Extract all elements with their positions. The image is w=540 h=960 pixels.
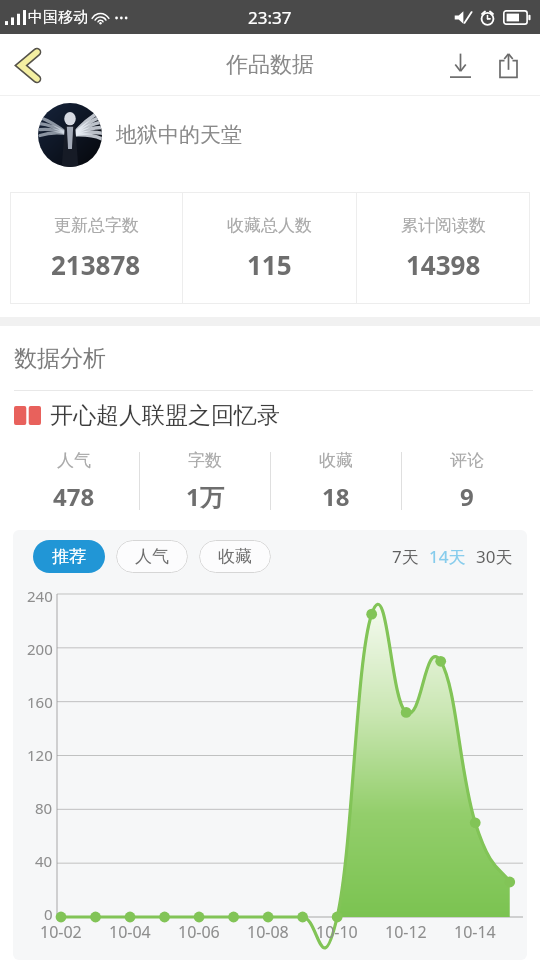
staticText: 人气 <box>135 546 169 567</box>
staticText: 10-04 <box>109 921 151 943</box>
button[interactable]: 收藏 <box>199 540 271 573</box>
button[interactable]: 30天 <box>475 538 514 575</box>
staticText: 213878 <box>51 247 141 282</box>
staticText: 收藏 <box>218 546 252 567</box>
button[interactable]: 收藏 <box>271 439 401 523</box>
staticText: 240 <box>27 586 53 606</box>
button[interactable]: Back <box>0 37 56 93</box>
staticText: 14398 <box>406 247 481 282</box>
staticText: 评论 <box>450 450 484 471</box>
staticText: 14天 <box>429 545 466 568</box>
staticText: 478 <box>53 480 95 513</box>
staticText: 10-08 <box>247 921 289 943</box>
staticText: 80 <box>35 798 53 818</box>
button[interactable]: 人气 <box>8 439 139 523</box>
staticText: 160 <box>27 692 53 712</box>
staticText: 推荐 <box>52 546 86 567</box>
staticText: 收藏总人数 <box>227 215 312 236</box>
staticText: 10-02 <box>40 921 82 943</box>
button[interactable]: 评论 <box>402 439 532 523</box>
staticText: 中国移动 <box>28 8 88 27</box>
button[interactable]: 收藏总人数 <box>183 192 356 304</box>
staticText: 115 <box>247 247 292 282</box>
staticText: 累计阅读数 <box>401 215 486 236</box>
staticText: 开心超人联盟之回忆录 <box>50 401 280 430</box>
staticText: 更新总字数 <box>54 215 139 236</box>
staticText: 字数 <box>188 450 222 471</box>
button[interactable]: 开心超人联盟之回忆录 <box>0 391 540 439</box>
staticText: 30天 <box>476 545 513 568</box>
staticText: 10-12 <box>385 921 427 943</box>
button[interactable]: 人气 <box>116 540 188 573</box>
staticText: 200 <box>27 639 53 659</box>
staticText: 40 <box>35 851 53 871</box>
staticText: 地狱中的天堂 <box>116 122 242 148</box>
button[interactable]: 7天 <box>391 538 420 575</box>
staticText: 0 <box>44 904 53 924</box>
staticText: 作品数据 <box>226 51 314 79</box>
button[interactable]: 地狱中的天堂 <box>0 96 540 174</box>
staticText: 120 <box>27 745 53 765</box>
button[interactable]: 字数 <box>140 439 270 523</box>
button[interactable]: 更新总字数 <box>10 192 182 304</box>
button[interactable]: Share <box>484 41 532 89</box>
staticText: 23:37 <box>248 6 292 29</box>
staticText: 10-14 <box>454 921 496 943</box>
staticText: 9 <box>460 480 474 513</box>
staticText: 10-10 <box>316 921 358 943</box>
staticText: 10-06 <box>178 921 220 943</box>
button[interactable]: Download <box>436 41 484 89</box>
staticText: 人气 <box>57 450 91 471</box>
staticText: 数据分析 <box>14 344 106 373</box>
staticText: 1万 <box>186 480 224 513</box>
button[interactable]: 推荐 <box>33 540 105 573</box>
button[interactable]: 14天 <box>428 538 467 575</box>
staticText: 18 <box>322 480 350 513</box>
staticText: 7天 <box>392 545 419 568</box>
staticText: 收藏 <box>319 450 353 471</box>
button[interactable]: 累计阅读数 <box>357 192 530 304</box>
